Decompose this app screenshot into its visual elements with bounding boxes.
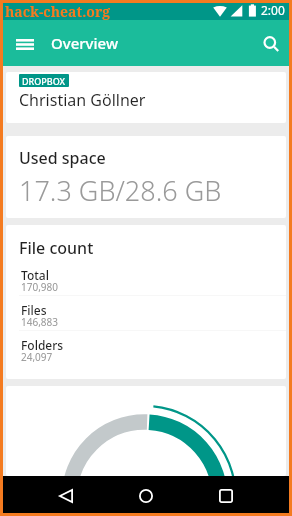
button[interactable]: Folders [19,337,286,366]
staticText: 24,097 [21,350,53,364]
button[interactable]: Back [42,476,89,516]
button[interactable]: Recent apps [202,476,249,516]
staticText: Folders [21,337,64,353]
button[interactable]: Total [19,267,286,296]
staticText: Files [21,302,47,318]
staticText: 17.3 GB/28.6 GB [19,172,222,209]
staticText: Overview [51,33,118,53]
button[interactable]: Search [253,26,289,62]
button[interactable]: Used space [6,136,286,218]
button[interactable]: Files [19,302,286,331]
staticText: File count [19,237,94,259]
staticText: Total [21,267,49,283]
staticText: 170,980 [21,280,58,294]
staticText: Christian Göllner [19,89,146,111]
staticText: DROPBOX [22,75,66,87]
staticText: Used space [19,147,106,169]
staticText: 146,883 [21,315,58,329]
button[interactable]: DROPBOX [6,72,286,123]
button[interactable]: Open navigation drawer [2,21,48,67]
staticText: 2:00 [261,2,285,18]
staticText: hack-cheat.org [5,2,111,21]
button[interactable]: Home [122,476,169,516]
